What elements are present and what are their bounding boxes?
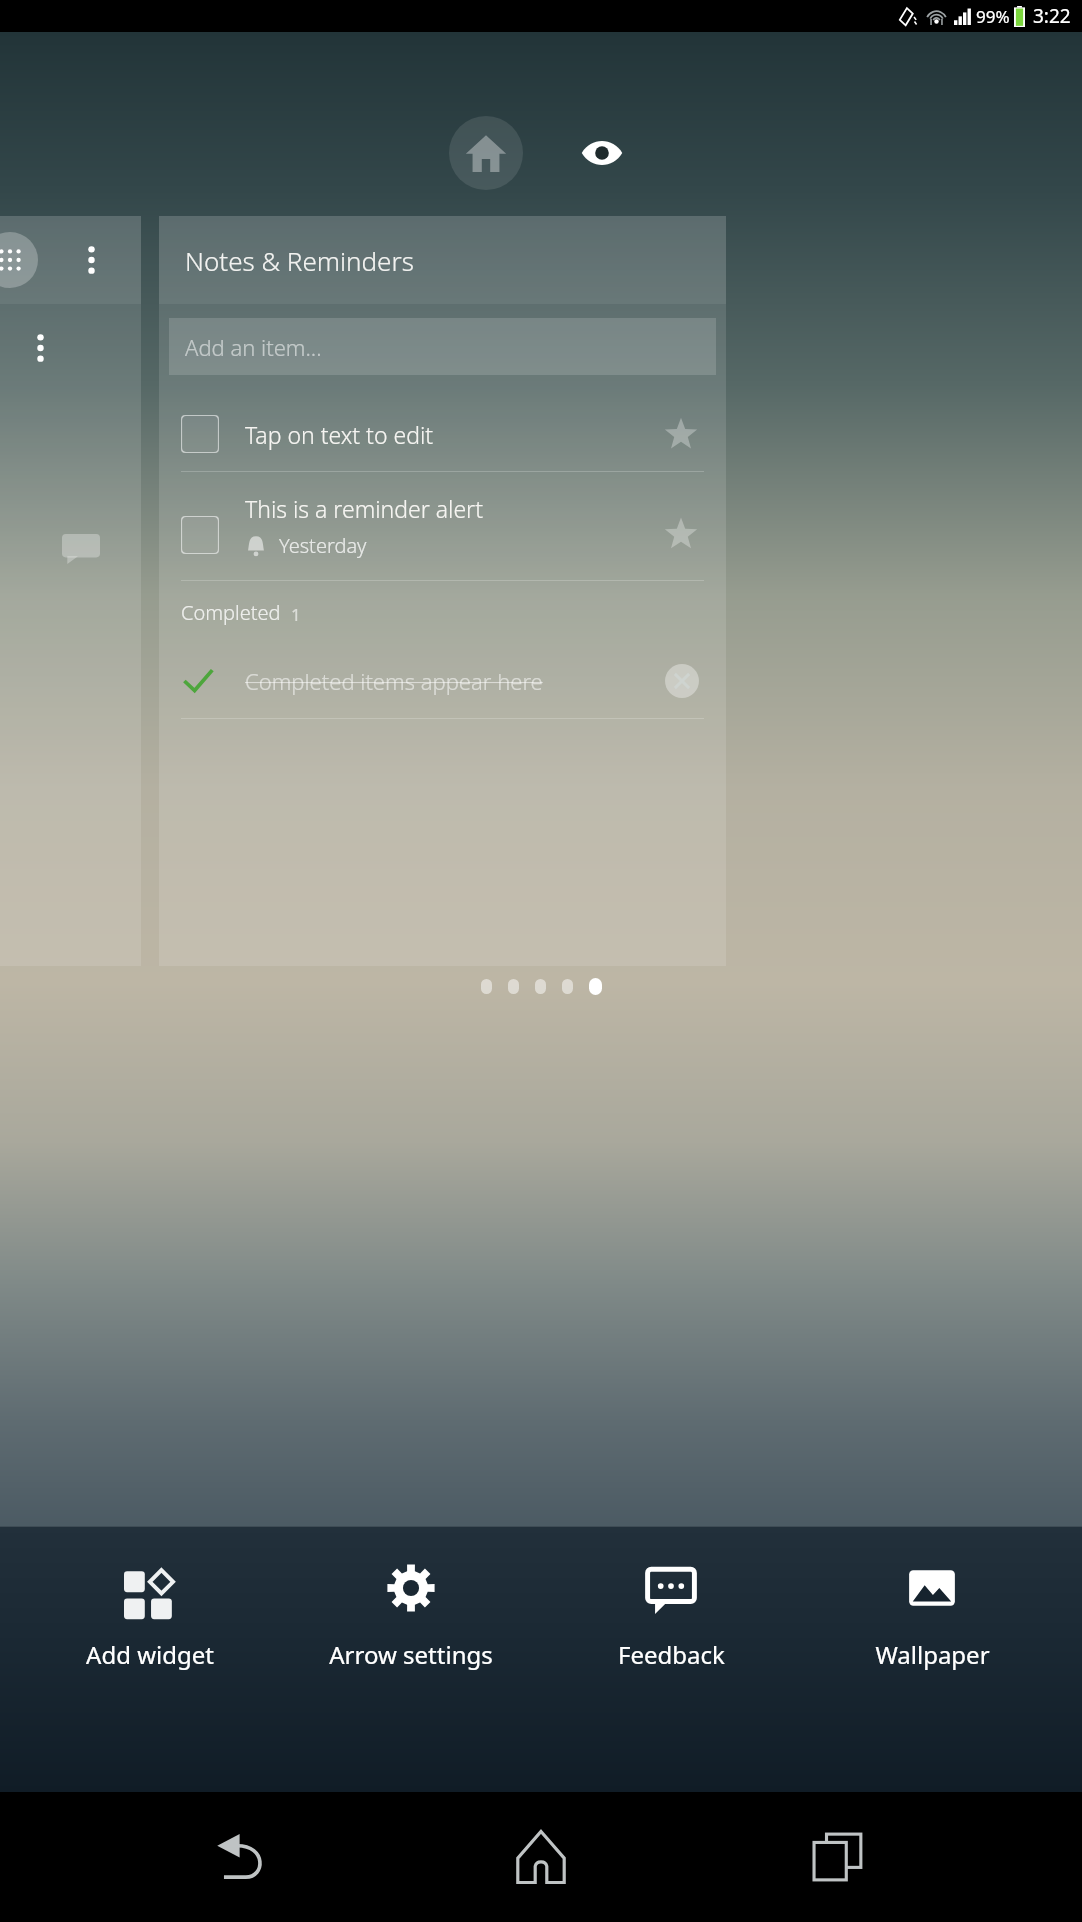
button[interactable]: Add an item... <box>169 318 716 375</box>
button[interactable]: Page 1 <box>481 979 492 994</box>
button[interactable]: Preview <box>571 122 633 184</box>
button[interactable]: Star <box>658 519 704 549</box>
staticText: 1 <box>291 603 301 626</box>
button[interactable]: Toggle <box>181 415 219 453</box>
staticText: Yesterday <box>279 532 367 559</box>
button[interactable]: Feedback <box>561 1562 781 1671</box>
button[interactable]: Page 2 <box>508 979 519 994</box>
button[interactable]: All apps <box>0 232 38 288</box>
staticText: 99% <box>976 5 1010 28</box>
button[interactable]: Home <box>486 1802 596 1912</box>
staticText: 3:22 <box>1033 3 1071 29</box>
button[interactable]: More options <box>22 330 58 366</box>
staticText: Completed items appear here <box>245 666 660 696</box>
button[interactable]: Toggle <box>181 472 704 580</box>
button[interactable]: Back <box>188 1802 298 1912</box>
button[interactable]: Page 3 <box>535 979 546 994</box>
button[interactable]: Add widget <box>40 1562 260 1671</box>
staticText: Arrow settings <box>329 1638 493 1671</box>
button[interactable]: Completed items appear here <box>181 644 704 718</box>
button[interactable]: Home <box>449 116 523 190</box>
button[interactable]: Star <box>658 411 704 457</box>
button[interactable]: All apps <box>0 216 141 304</box>
button[interactable]: Arrow settings <box>301 1562 521 1671</box>
staticText: Add widget <box>86 1638 214 1671</box>
staticText: Notes & Reminders <box>185 243 414 278</box>
button[interactable]: Notes & Reminders <box>159 216 726 304</box>
button[interactable]: Remove <box>660 659 704 703</box>
staticText: This is a reminder alert <box>245 493 483 524</box>
staticText: Feedback <box>618 1638 725 1671</box>
button[interactable]: Recent apps <box>784 1802 894 1912</box>
button[interactable]: Wallpaper <box>822 1562 1042 1671</box>
button[interactable]: Page 4 <box>562 979 573 994</box>
staticText: Completed <box>181 599 281 626</box>
button[interactable]: More options <box>71 240 111 280</box>
button[interactable]: Toggle <box>181 516 219 554</box>
button[interactable]: Page 5 <box>589 978 602 995</box>
staticText: Wallpaper <box>875 1638 990 1671</box>
button[interactable]: Toggle <box>181 397 704 471</box>
staticText: Tap on text to edit <box>245 419 434 450</box>
staticText: Add an item... <box>185 332 322 362</box>
